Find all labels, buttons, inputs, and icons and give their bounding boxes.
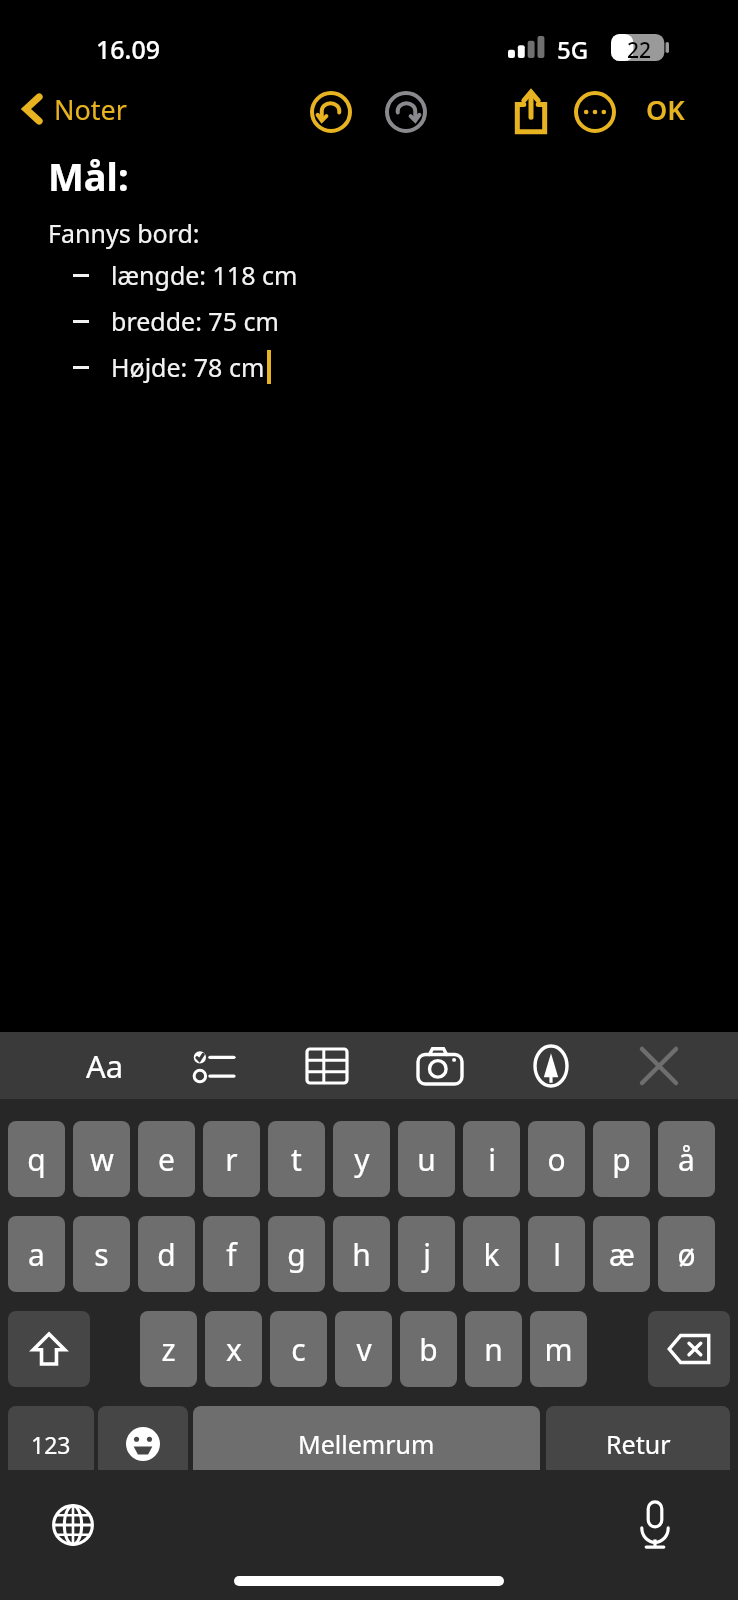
staticText: g [287, 1234, 306, 1275]
button[interactable]: Close [625, 1038, 693, 1094]
staticText: b [419, 1329, 438, 1370]
staticText: ø [677, 1234, 696, 1275]
staticText: k [483, 1234, 500, 1275]
staticText: t [291, 1139, 302, 1180]
staticText: d [157, 1234, 176, 1275]
button[interactable]: Undo [305, 86, 357, 138]
button[interactable]: f [203, 1216, 260, 1292]
staticText: 16.09 [96, 32, 161, 66]
button[interactable]: Markup [517, 1038, 585, 1094]
button[interactable]: e [138, 1121, 195, 1197]
button[interactable]: b [400, 1311, 457, 1387]
button[interactable]: Redo [380, 86, 432, 138]
staticText: q [27, 1139, 46, 1180]
button[interactable]: s [73, 1216, 130, 1292]
staticText: y [354, 1139, 370, 1180]
button[interactable]: x [205, 1311, 262, 1387]
staticText: Fannys bord: [48, 216, 200, 250]
staticText: l [553, 1234, 561, 1275]
staticText: a [28, 1234, 45, 1275]
button[interactable]: h [333, 1216, 390, 1292]
button[interactable]: q [8, 1121, 65, 1197]
button[interactable]: o [528, 1121, 585, 1197]
button[interactable]: r [203, 1121, 260, 1197]
button[interactable]: Share [505, 86, 557, 138]
staticText: n [484, 1329, 503, 1370]
button[interactable]: v [335, 1311, 392, 1387]
button[interactable]: y [333, 1121, 390, 1197]
button[interactable]: i [463, 1121, 520, 1197]
button[interactable]: w [73, 1121, 130, 1197]
button[interactable]: Change keyboard [40, 1492, 106, 1558]
button[interactable]: p [593, 1121, 650, 1197]
button[interactable]: l [528, 1216, 585, 1292]
button[interactable]: t [268, 1121, 325, 1197]
staticText: Mellemrum [298, 1427, 435, 1461]
staticText: OK [646, 91, 685, 128]
staticText: 22 [627, 36, 652, 65]
staticText: o [547, 1139, 566, 1180]
button[interactable]: Checklist [181, 1038, 249, 1094]
staticText: j [423, 1234, 431, 1275]
staticText: r [225, 1139, 238, 1180]
button[interactable]: Emoji [98, 1406, 188, 1482]
button[interactable]: Camera [406, 1038, 474, 1094]
staticText: bredde: 75 cm [111, 304, 279, 338]
button[interactable]: Numbers [8, 1406, 94, 1482]
button[interactable]: d [138, 1216, 195, 1292]
staticText: h [352, 1234, 371, 1275]
staticText: c [291, 1329, 306, 1370]
staticText: z [161, 1329, 176, 1370]
button[interactable]: a [8, 1216, 65, 1292]
button[interactable]: Table [293, 1038, 361, 1094]
staticText: v [356, 1329, 372, 1370]
button[interactable]: m [530, 1311, 587, 1387]
button[interactable]: j [398, 1216, 455, 1292]
staticText: å [678, 1139, 695, 1180]
staticText: w [90, 1139, 114, 1180]
staticText: Højde: 78 cm [111, 350, 265, 384]
button[interactable]: å [658, 1121, 715, 1197]
staticText: u [417, 1139, 436, 1180]
staticText: Aa [86, 1045, 124, 1087]
button[interactable]: Dictation [622, 1492, 688, 1558]
staticText: Noter [54, 91, 127, 128]
staticText: s [94, 1234, 109, 1275]
button[interactable]: n [465, 1311, 522, 1387]
button[interactable]: z [140, 1311, 197, 1387]
staticText: x [226, 1329, 242, 1370]
button[interactable]: k [463, 1216, 520, 1292]
button[interactable]: u [398, 1121, 455, 1197]
staticText: længde: 118 cm [111, 258, 298, 292]
button[interactable]: æ [593, 1216, 650, 1292]
button[interactable]: OK [636, 86, 695, 132]
staticText: 123 [31, 1429, 71, 1460]
button[interactable]: g [268, 1216, 325, 1292]
button[interactable]: Shift [8, 1311, 90, 1387]
staticText: p [612, 1139, 631, 1180]
button[interactable]: Retur [546, 1406, 730, 1482]
staticText: m [544, 1329, 573, 1370]
staticText: e [158, 1139, 175, 1180]
staticText: 5G [557, 33, 589, 66]
button[interactable]: Format [71, 1038, 139, 1094]
staticText: Mål: [48, 150, 129, 202]
button[interactable]: Noter [14, 78, 135, 140]
button[interactable]: More [569, 86, 621, 138]
button[interactable]: Backspace [648, 1311, 730, 1387]
button[interactable]: c [270, 1311, 327, 1387]
staticText: i [488, 1139, 496, 1180]
staticText: Retur [606, 1427, 671, 1461]
staticText: f [226, 1234, 237, 1275]
button[interactable]: Mellemrum [193, 1406, 540, 1482]
staticText: æ [609, 1234, 635, 1275]
button[interactable]: ø [658, 1216, 715, 1292]
